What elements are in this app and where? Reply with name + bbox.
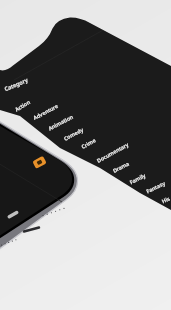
- button[interactable]: Movie category app mockup: [0, 0, 171, 310]
